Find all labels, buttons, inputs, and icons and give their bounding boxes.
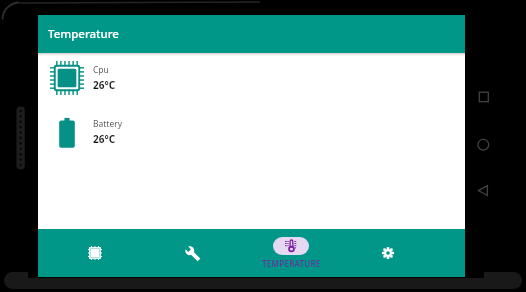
staticText: 26°C	[93, 132, 116, 146]
button[interactable]	[364, 229, 412, 277]
staticText: Battery	[93, 118, 123, 130]
button[interactable]: Cpu	[38, 61, 465, 95]
button[interactable]: Battery	[38, 115, 465, 149]
staticText: 26°C	[93, 78, 116, 92]
staticText: Temperature	[48, 26, 119, 42]
button[interactable]: Temperature	[38, 15, 465, 53]
button[interactable]: TEMPERATURE	[243, 229, 339, 277]
staticText: Cpu	[93, 64, 109, 76]
button[interactable]	[71, 229, 119, 277]
button[interactable]	[168, 229, 216, 277]
staticText: TEMPERATURE	[262, 258, 321, 269]
